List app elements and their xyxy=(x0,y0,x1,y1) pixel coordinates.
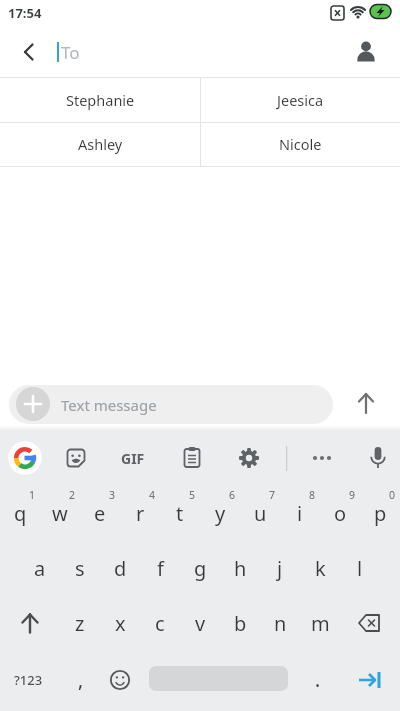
staticText: s xyxy=(75,555,85,582)
staticText: 6 xyxy=(229,488,236,502)
staticText: Stephanie xyxy=(66,90,135,110)
button[interactable] xyxy=(174,440,210,476)
button[interactable]: Nicole xyxy=(200,122,400,166)
staticText: d xyxy=(114,555,127,582)
button[interactable]: a xyxy=(20,541,60,595)
button[interactable] xyxy=(0,596,60,650)
staticText: e xyxy=(94,500,106,527)
button[interactable]: e xyxy=(80,486,120,540)
button[interactable] xyxy=(344,652,396,708)
staticText: , xyxy=(78,667,84,693)
staticText: z xyxy=(75,610,85,637)
button[interactable]: n xyxy=(260,596,300,650)
button[interactable] xyxy=(58,440,94,476)
button[interactable]: p xyxy=(360,486,400,540)
button[interactable]: s xyxy=(60,541,100,595)
button[interactable] xyxy=(231,440,267,476)
staticText: t xyxy=(176,500,184,527)
button[interactable]: f xyxy=(140,541,180,595)
staticText: k xyxy=(315,555,326,582)
staticText: h xyxy=(234,555,247,582)
staticText: l xyxy=(357,555,363,582)
staticText: 1 xyxy=(29,488,36,502)
button[interactable]: o xyxy=(320,486,360,540)
button[interactable] xyxy=(348,34,384,70)
button[interactable]: h xyxy=(220,541,260,595)
staticText: Ashley xyxy=(78,134,123,154)
button[interactable]: q xyxy=(0,486,40,540)
staticText: GIF xyxy=(121,449,145,468)
button[interactable]: j xyxy=(260,541,300,595)
button[interactable] xyxy=(348,385,384,421)
staticText: v xyxy=(195,610,206,637)
button[interactable]: d xyxy=(100,541,140,595)
staticText: Jeesica xyxy=(277,90,324,110)
staticText: Nicole xyxy=(279,134,322,154)
button[interactable] xyxy=(7,440,43,476)
button[interactable]: , xyxy=(60,652,102,708)
staticText: r xyxy=(136,500,145,527)
button[interactable]: w xyxy=(40,486,80,540)
staticText: ?123 xyxy=(14,671,43,689)
button[interactable]: b xyxy=(220,596,260,650)
staticText: q xyxy=(14,500,27,527)
button[interactable]: Ashley xyxy=(0,122,200,166)
button[interactable] xyxy=(10,34,46,70)
button[interactable]: r xyxy=(120,486,160,540)
staticText: g xyxy=(194,555,207,582)
staticText: j xyxy=(277,555,283,582)
button[interactable]: g xyxy=(180,541,220,595)
button[interactable]: k xyxy=(300,541,340,595)
staticText: n xyxy=(274,610,287,637)
staticText: x xyxy=(115,610,126,637)
button[interactable]: GIF xyxy=(115,440,151,476)
staticText: 0 xyxy=(389,488,396,502)
button[interactable]: u xyxy=(240,486,280,540)
staticText: . xyxy=(315,667,321,693)
staticText: y xyxy=(215,500,226,527)
staticText: o xyxy=(334,500,347,527)
staticText: 2 xyxy=(69,488,76,502)
button[interactable]: x xyxy=(100,596,140,650)
button[interactable] xyxy=(340,596,400,650)
button[interactable]: t xyxy=(160,486,200,540)
staticText: Text message xyxy=(61,395,157,415)
staticText: To xyxy=(61,41,80,64)
button[interactable]: m xyxy=(300,596,340,650)
staticText: i xyxy=(297,500,303,527)
button[interactable]: c xyxy=(140,596,180,650)
button[interactable]: y xyxy=(200,486,240,540)
button[interactable]: . xyxy=(298,652,338,708)
staticText: 17:54 xyxy=(8,4,42,22)
staticText: f xyxy=(157,555,164,582)
staticText: 7 xyxy=(269,488,276,502)
staticText: m xyxy=(311,610,330,637)
button[interactable] xyxy=(360,440,396,476)
button[interactable]: v xyxy=(180,596,220,650)
staticText: 8 xyxy=(309,488,316,502)
staticText: 3 xyxy=(109,488,116,502)
staticText: p xyxy=(374,500,387,527)
staticText: 9 xyxy=(349,488,356,502)
staticText: a xyxy=(34,555,46,582)
button[interactable]: i xyxy=(280,486,320,540)
staticText: u xyxy=(254,500,267,527)
button[interactable]: ?123 xyxy=(0,652,56,708)
button[interactable]: z xyxy=(60,596,100,650)
staticText: 4 xyxy=(149,488,156,502)
staticText: w xyxy=(52,500,68,527)
button[interactable] xyxy=(100,652,140,708)
button[interactable]: Jeesica xyxy=(200,77,400,122)
button[interactable] xyxy=(16,387,50,421)
button[interactable]: Text message xyxy=(9,385,333,424)
button[interactable]: l xyxy=(340,541,380,595)
button[interactable]: Stephanie xyxy=(0,77,200,122)
staticText: b xyxy=(234,610,247,637)
button[interactable] xyxy=(304,440,340,476)
staticText: c xyxy=(155,610,165,637)
staticText: 5 xyxy=(189,488,196,502)
